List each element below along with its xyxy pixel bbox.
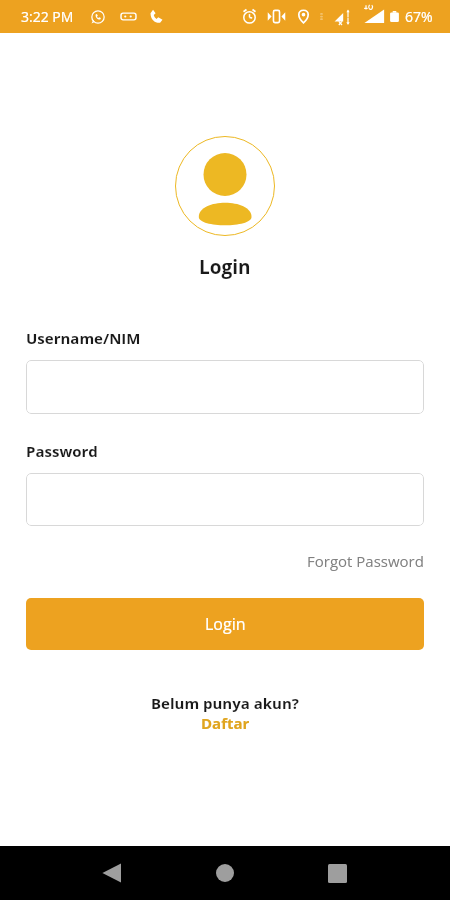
staticText: Username/NIM — [26, 328, 141, 348]
button[interactable] — [26, 360, 424, 414]
button[interactable] — [26, 473, 424, 526]
button[interactable]: Forgot Password — [307, 551, 424, 571]
staticText: Password — [26, 441, 98, 461]
staticText: Login — [205, 613, 246, 635]
button[interactable]: Recent apps — [310, 846, 364, 900]
staticText: Login — [199, 254, 251, 280]
button[interactable]: Home — [198, 846, 252, 900]
button[interactable]: Back — [85, 846, 139, 900]
staticText: 67% — [405, 7, 433, 26]
button[interactable]: Login — [26, 598, 424, 650]
staticText: 3:22 PM — [21, 7, 74, 26]
staticText: Belum punya akun? — [151, 693, 299, 713]
button[interactable]: Daftar — [201, 713, 250, 733]
